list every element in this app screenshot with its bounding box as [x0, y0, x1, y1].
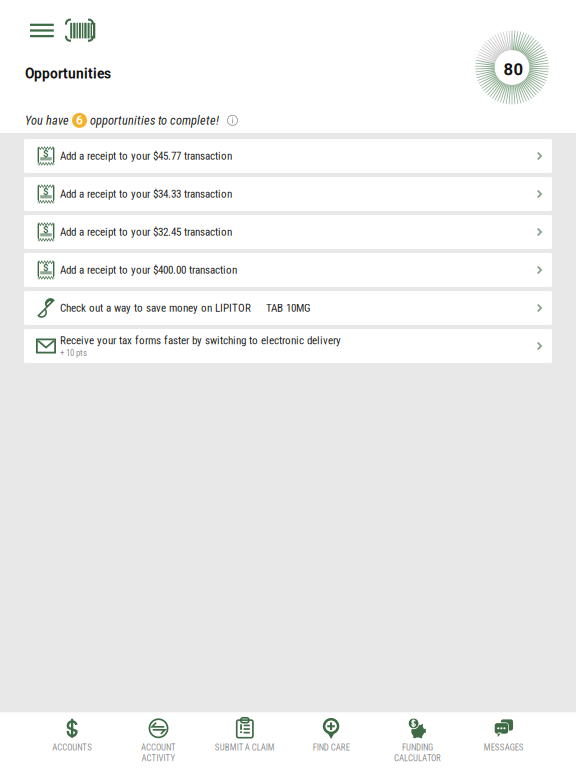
- staticText: You have: [25, 113, 72, 128]
- button[interactable]: FIND CARE: [288, 712, 374, 768]
- staticText: ACTIVITY: [141, 753, 175, 763]
- button[interactable]: $: [24, 253, 552, 287]
- staticText: Opportunities: [25, 66, 111, 82]
- staticText: SUBMIT A CLAIM: [215, 742, 275, 753]
- staticText: ACCOUNTS: [52, 742, 92, 753]
- button[interactable]: Scan member card: [63, 19, 96, 42]
- staticText: Add a receipt to your $45.77 transaction: [60, 149, 232, 162]
- staticText: $: [43, 262, 49, 273]
- staticText: Add a receipt to your $32.45 transaction: [60, 225, 232, 238]
- staticText: 6: [76, 113, 83, 127]
- button[interactable]: Receive your tax forms faster by switchi…: [24, 329, 552, 363]
- button[interactable]: Menu: [27, 19, 57, 42]
- button[interactable]: FUNDING: [374, 712, 461, 768]
- button[interactable]: ACCOUNT: [115, 712, 202, 768]
- staticText: Add a receipt to your $34.33 transaction: [60, 187, 232, 200]
- staticText: opportunities to complete!: [87, 113, 219, 128]
- staticText: TAB 10MG: [266, 301, 311, 314]
- staticText: $: [43, 148, 49, 159]
- button[interactable]: ACCOUNTS: [29, 712, 115, 768]
- button[interactable]: SUBMIT A CLAIM: [202, 712, 288, 768]
- staticText: CALCULATOR: [394, 753, 441, 763]
- staticText: MESSAGES: [484, 742, 524, 753]
- button[interactable]: $: [24, 215, 552, 249]
- staticText: 80: [503, 60, 523, 79]
- button[interactable]: $: [24, 177, 552, 211]
- staticText: FIND CARE: [313, 742, 350, 753]
- button[interactable]: Check out a way to save money on LIPITOR: [24, 291, 552, 325]
- staticText: $: [43, 224, 49, 235]
- staticText: $: [43, 186, 49, 197]
- staticText: Add a receipt to your $400.00 transactio…: [60, 263, 237, 276]
- button[interactable]: $: [24, 139, 552, 173]
- staticText: Check out a way to save money on LIPITOR: [60, 301, 251, 314]
- staticText: ACCOUNT: [141, 742, 176, 753]
- button[interactable]: MESSAGES: [461, 712, 547, 768]
- staticText: FUNDING: [402, 742, 433, 753]
- staticText: Receive your tax forms faster by switchi…: [60, 334, 341, 347]
- staticText: + 10 pts: [60, 348, 87, 358]
